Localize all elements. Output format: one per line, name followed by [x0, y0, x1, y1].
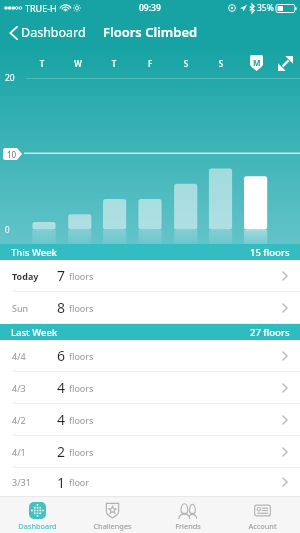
staticText: Dashboard: [21, 24, 86, 41]
staticText: floors: [69, 270, 94, 282]
button[interactable]: Monthly view: [250, 55, 263, 71]
staticText: Floors Climbed: [103, 23, 198, 41]
staticText: 27 floors: [250, 326, 290, 339]
staticText: M: [253, 57, 261, 68]
staticText: 4/2: [12, 414, 57, 426]
staticText: 4/1: [12, 446, 57, 458]
button[interactable]: 4/1: [0, 436, 300, 468]
staticText: Account: [248, 521, 277, 531]
staticText: TRUE-H: [25, 2, 57, 14]
button[interactable]: Last Week: [0, 324, 300, 340]
staticText: Today: [12, 270, 57, 282]
button[interactable]: Dashboard: [0, 24, 92, 41]
staticText: 8: [57, 298, 66, 317]
staticText: 35%: [257, 2, 274, 14]
staticText: Sun: [12, 302, 57, 314]
staticText: S: [217, 58, 225, 69]
staticText: 3/31: [12, 476, 57, 488]
staticText: floors: [69, 382, 94, 394]
staticText: 2: [57, 442, 66, 461]
staticText: floor: [69, 476, 90, 488]
staticText: Last Week: [11, 326, 58, 339]
staticText: 20: [5, 72, 15, 84]
staticText: 4/4: [12, 350, 57, 362]
staticText: 10: [7, 149, 17, 160]
staticText: 7: [57, 266, 66, 285]
staticText: floors: [69, 350, 94, 362]
button[interactable]: Today: [0, 260, 300, 292]
staticText: F: [146, 58, 154, 69]
button[interactable]: Dashboard: [0, 499, 75, 533]
button[interactable]: 3/31: [0, 468, 300, 496]
staticText: 1: [57, 473, 66, 492]
staticText: floors: [69, 302, 94, 314]
staticText: S: [182, 58, 190, 69]
staticText: Dashboard: [18, 521, 57, 531]
staticText: T: [110, 58, 118, 69]
button[interactable]: 4/2: [0, 404, 300, 436]
staticText: floors: [69, 414, 94, 426]
staticText: 0: [5, 224, 10, 235]
button[interactable]: 4/4: [0, 340, 300, 372]
staticText: 4: [57, 410, 66, 429]
staticText: 15 floors: [250, 246, 290, 259]
button[interactable]: Friends: [150, 499, 225, 533]
staticText: floors: [69, 446, 94, 458]
staticText: Friends: [175, 521, 201, 531]
button[interactable]: Sun: [0, 292, 300, 324]
button[interactable]: 4/3: [0, 372, 300, 404]
staticText: T: [38, 58, 46, 69]
staticText: 4/3: [12, 382, 57, 394]
staticText: Challenges: [93, 521, 132, 531]
staticText: W: [74, 58, 82, 69]
staticText: 6: [57, 346, 66, 365]
button[interactable]: Challenges: [75, 499, 150, 533]
button[interactable]: Account: [225, 499, 300, 533]
button[interactable]: Expand chart: [278, 56, 293, 71]
staticText: This Week: [11, 246, 57, 259]
staticText: 09:39: [139, 2, 161, 14]
staticText: 4: [57, 378, 66, 397]
